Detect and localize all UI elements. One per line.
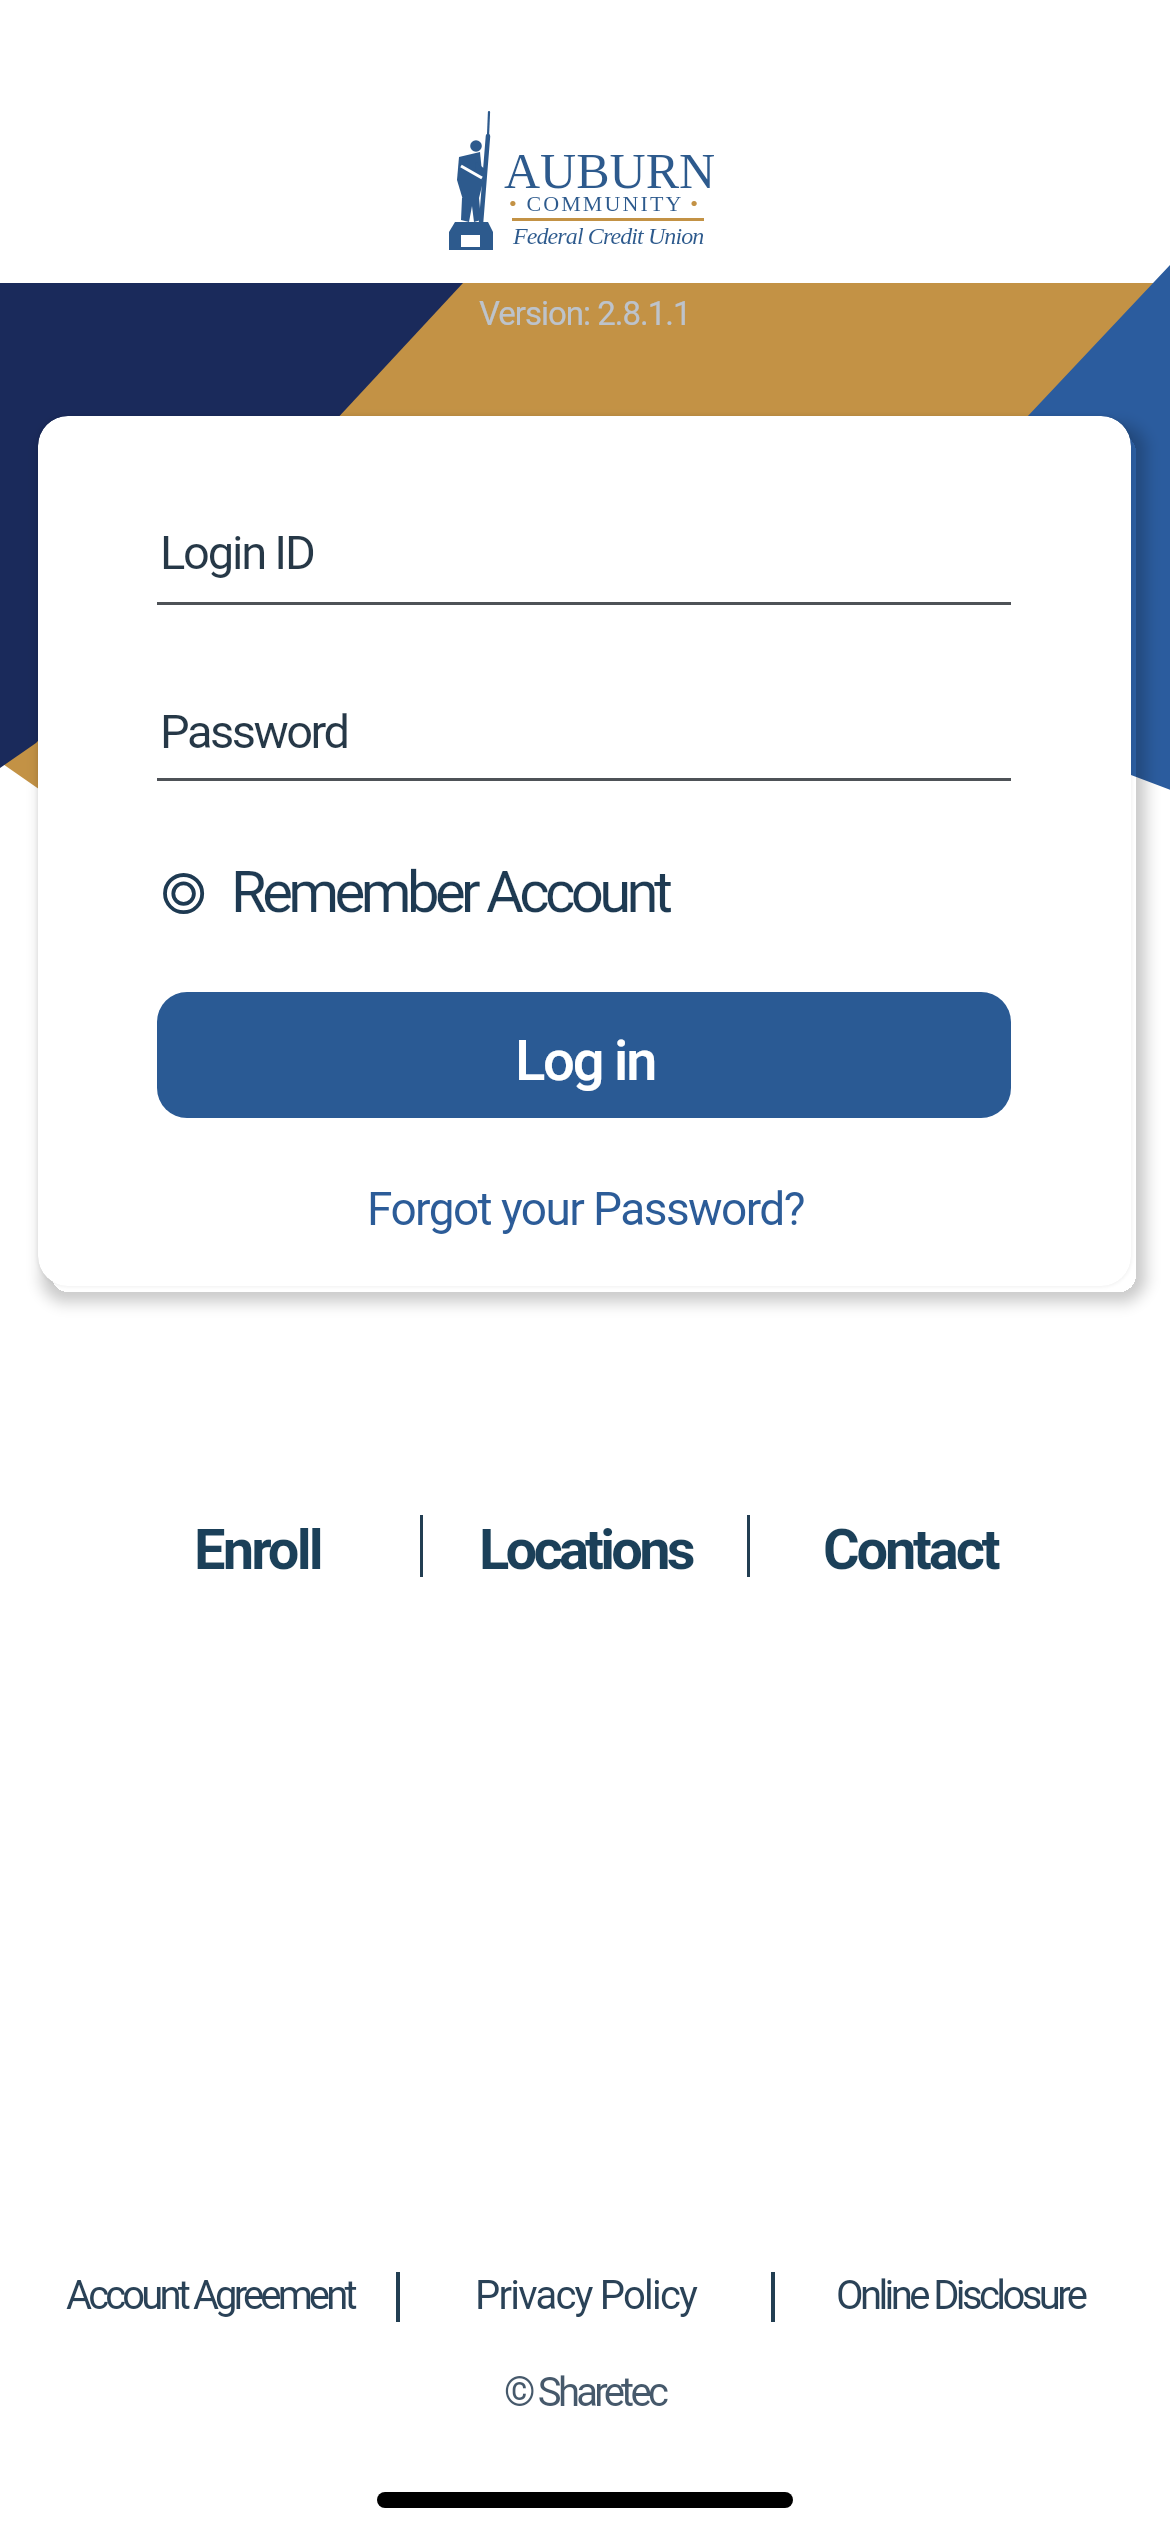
staticText: Online Disclosure <box>836 2272 1085 2319</box>
staticText: AUBURN <box>504 143 716 198</box>
staticText: Federal Credit Union <box>513 223 704 250</box>
staticText: Password <box>160 704 348 759</box>
button[interactable] <box>470 2260 720 2330</box>
staticText: Account Agreement <box>66 2272 354 2319</box>
staticText: Forgot your Password? <box>367 1182 804 1236</box>
staticText: © Sharetec <box>504 2369 666 2416</box>
staticText: Privacy Policy <box>475 2272 697 2319</box>
staticText: Remember Account <box>231 858 669 926</box>
button[interactable] <box>820 2260 1110 2330</box>
button[interactable] <box>795 1505 1025 1595</box>
button[interactable] <box>455 1505 715 1595</box>
staticText: Log in <box>515 1028 656 1094</box>
button[interactable]: Forgot your Password? <box>367 1182 804 1236</box>
button[interactable] <box>50 2260 370 2330</box>
staticText: Login ID <box>160 525 314 580</box>
staticText: • COMMUNITY • <box>509 191 701 215</box>
staticText: Version: 2.8.1.1 <box>479 294 691 333</box>
staticText: Locations <box>479 1517 692 1583</box>
button[interactable] <box>152 852 682 934</box>
staticText: Contact <box>823 1517 998 1583</box>
button[interactable] <box>166 1505 350 1595</box>
staticText: Enroll <box>194 1517 321 1583</box>
button[interactable] <box>157 992 1011 1118</box>
